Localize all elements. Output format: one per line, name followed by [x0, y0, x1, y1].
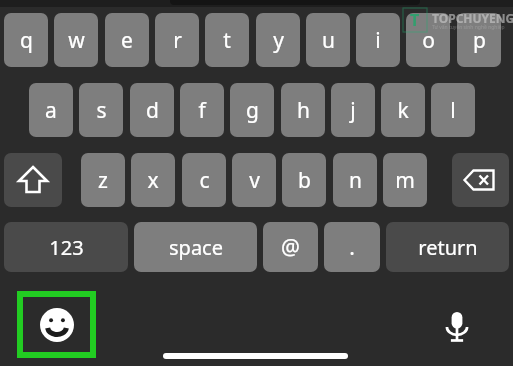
button[interactable]: z: [81, 153, 125, 207]
button[interactable]: f: [180, 83, 224, 137]
staticText: f: [198, 96, 206, 125]
button[interactable]: r: [155, 13, 199, 67]
button[interactable]: Shift: [4, 153, 62, 207]
staticText: m: [395, 166, 415, 195]
button[interactable]: i: [356, 13, 400, 67]
staticText: k: [397, 96, 409, 125]
staticText: Tư vấn tuyển sinh nghề nghiệp: [432, 24, 505, 31]
button[interactable]: p: [457, 13, 501, 67]
staticText: x: [147, 166, 159, 195]
button[interactable]: l: [431, 83, 475, 137]
staticText: g: [246, 96, 259, 125]
button[interactable]: b: [282, 153, 326, 207]
staticText: return: [418, 234, 478, 261]
staticText: h: [297, 96, 310, 125]
staticText: j: [350, 96, 356, 125]
staticText: T: [410, 9, 420, 31]
staticText: v: [249, 166, 260, 195]
staticText: y: [273, 26, 284, 55]
staticText: z: [98, 166, 108, 195]
staticText: q: [20, 26, 33, 55]
staticText: c: [199, 166, 210, 195]
staticText: TOPCHUYENGIA: [432, 10, 513, 26]
staticText: l: [450, 96, 456, 125]
staticText: d: [146, 96, 159, 125]
button[interactable]: y: [256, 13, 300, 67]
button[interactable]: o: [406, 13, 450, 67]
staticText: u: [322, 26, 335, 55]
button[interactable]: w: [54, 13, 98, 67]
button[interactable]: v: [232, 153, 276, 207]
button[interactable]: c: [182, 153, 226, 207]
button[interactable]: h: [281, 83, 325, 137]
button[interactable]: k: [381, 83, 425, 137]
button[interactable]: s: [79, 83, 123, 137]
staticText: t: [223, 26, 231, 55]
staticText: e: [121, 26, 133, 55]
button[interactable]: a: [29, 83, 73, 137]
staticText: s: [96, 96, 107, 125]
button[interactable]: m: [383, 153, 427, 207]
button[interactable]: n: [333, 153, 377, 207]
staticText: space: [169, 234, 223, 261]
button[interactable]: Backspace: [452, 153, 509, 207]
button[interactable]: space: [134, 222, 257, 272]
staticText: @: [281, 233, 300, 262]
staticText: r: [173, 26, 182, 55]
button[interactable]: d: [130, 83, 174, 137]
button[interactable]: j: [331, 83, 375, 137]
button[interactable]: q: [4, 13, 48, 67]
staticText: 123: [49, 234, 84, 261]
staticText: n: [349, 166, 362, 195]
button[interactable]: Voice input: [429, 297, 484, 352]
button[interactable]: e: [105, 13, 149, 67]
button[interactable]: Emoji: [23, 297, 90, 352]
button[interactable]: u: [306, 13, 350, 67]
button[interactable]: 123: [4, 222, 128, 272]
staticText: i: [375, 26, 381, 55]
staticText: p: [473, 26, 486, 55]
staticText: w: [68, 26, 85, 55]
button[interactable]: .: [324, 222, 380, 272]
staticText: b: [298, 166, 311, 195]
button[interactable]: x: [131, 153, 175, 207]
staticText: .: [349, 233, 355, 262]
button[interactable]: t: [205, 13, 249, 67]
staticText: a: [45, 96, 57, 125]
staticText: o: [422, 26, 435, 55]
button[interactable]: g: [230, 83, 274, 137]
button[interactable]: return: [386, 222, 509, 272]
button[interactable]: @: [263, 222, 318, 272]
